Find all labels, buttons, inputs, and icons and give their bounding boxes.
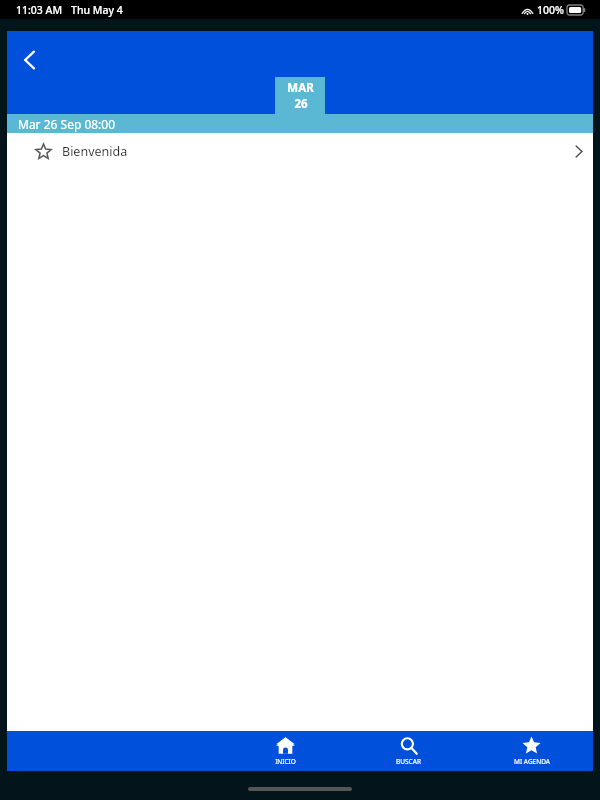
staticText: Mar 26 Sep 08:00: [18, 116, 116, 132]
button[interactable]: Back: [14, 44, 46, 76]
staticText: 26: [294, 96, 308, 112]
button[interactable]: MI AGENDA: [470, 731, 593, 771]
staticText: Thu May 4: [71, 3, 123, 17]
button[interactable]: MAR: [275, 77, 325, 114]
button[interactable]: BUSCAR: [347, 731, 470, 771]
staticText: BUSCAR: [396, 757, 421, 766]
staticText: 11:03 AM: [16, 3, 63, 17]
staticText: INICIO: [275, 757, 296, 766]
staticText: MAR: [287, 80, 314, 96]
button[interactable]: Bienvenida: [7, 133, 593, 169]
staticText: MI AGENDA: [514, 757, 550, 766]
staticText: 100%: [537, 3, 564, 17]
staticText: Bienvenida: [62, 143, 128, 160]
button[interactable]: INICIO: [224, 731, 347, 771]
